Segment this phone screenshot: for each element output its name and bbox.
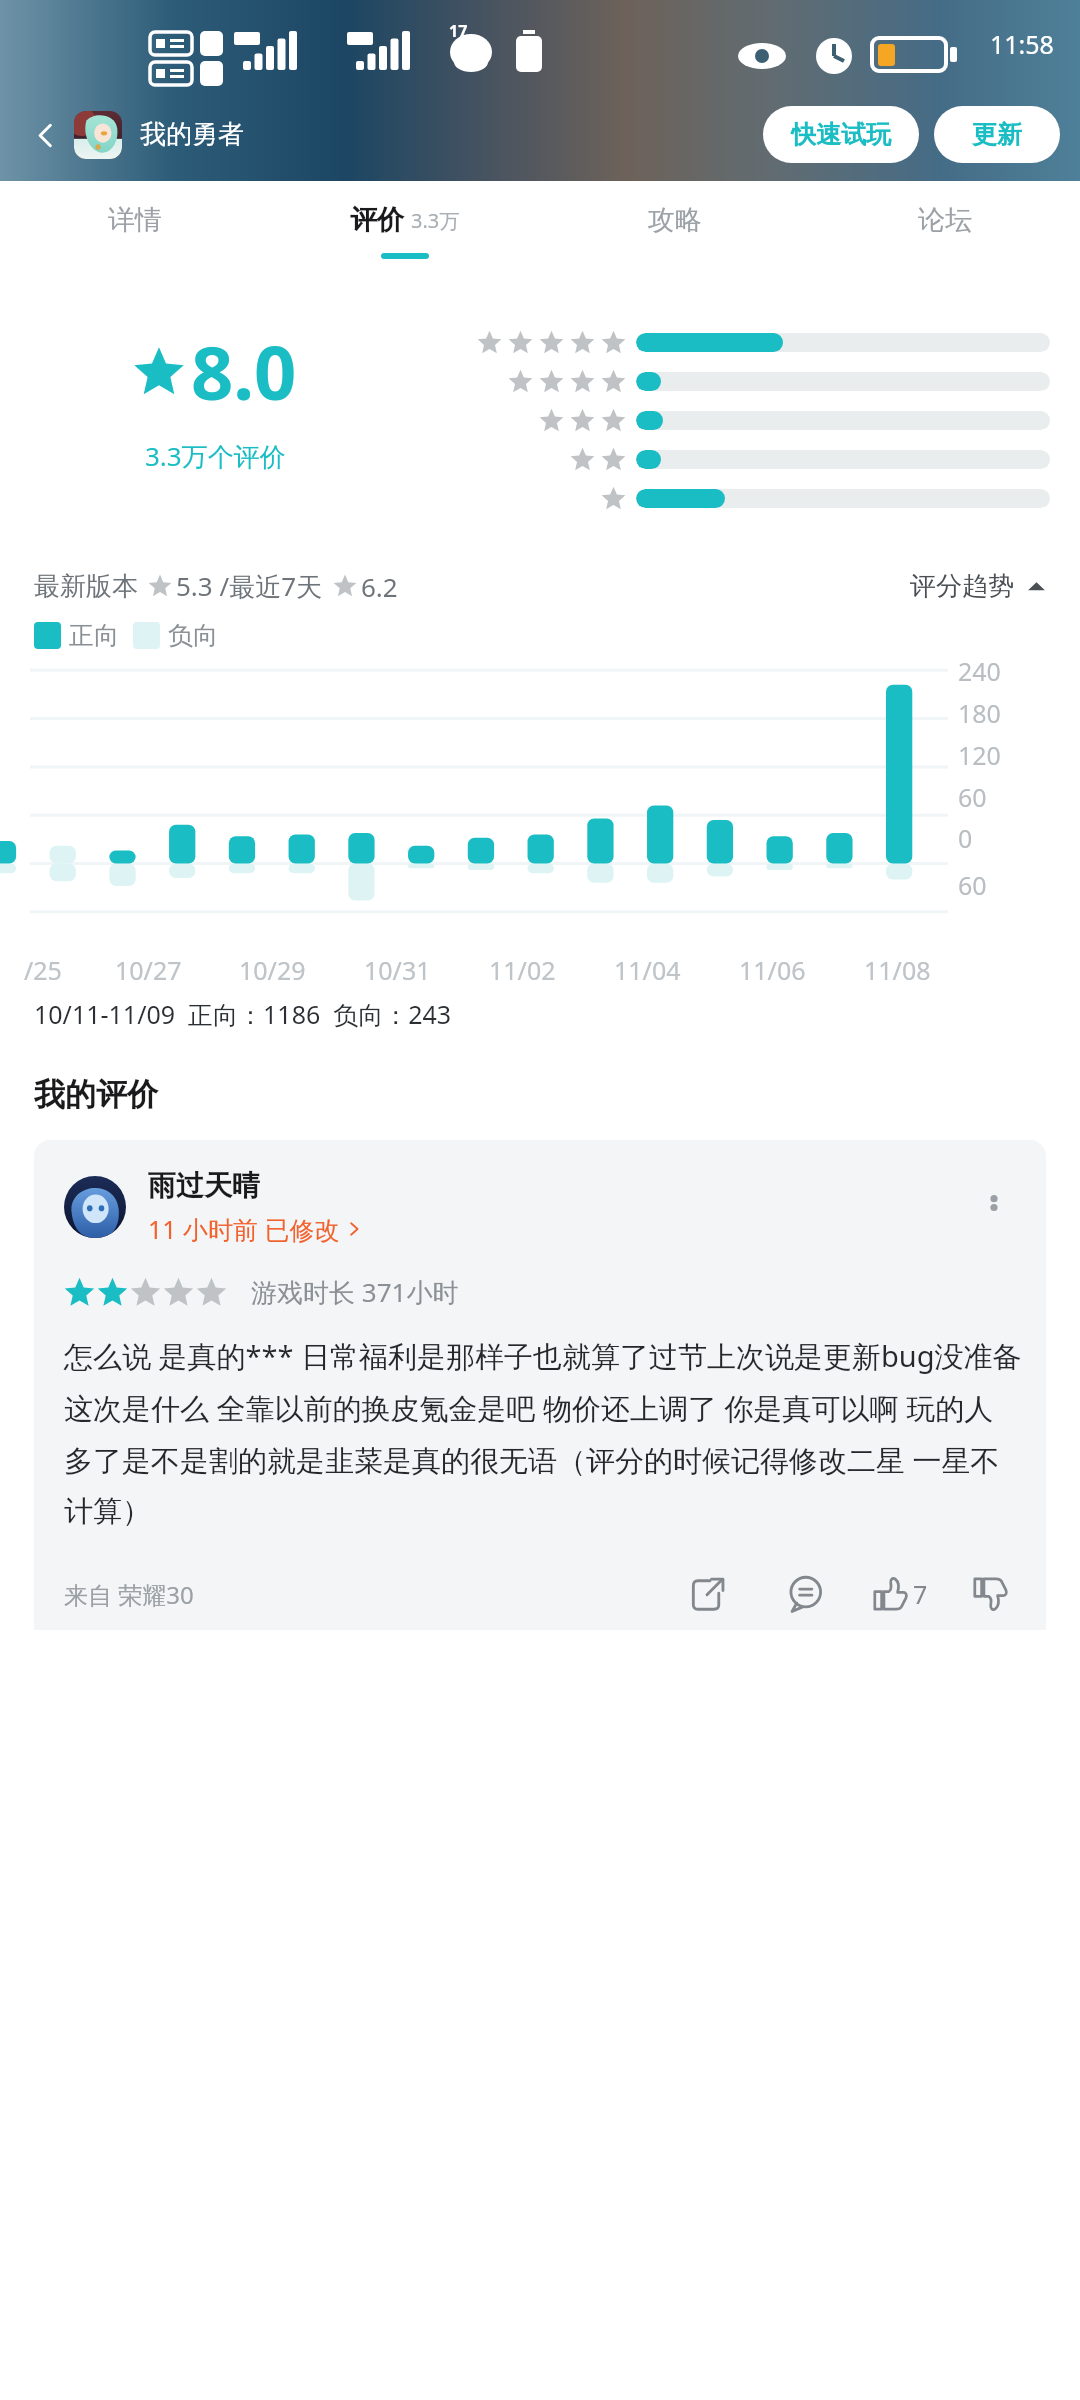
staticText: 11/02 [489,953,556,987]
staticText: /25 [24,953,62,987]
staticText: 3.3万 [411,207,460,234]
button[interactable]: Comment [779,1568,831,1620]
staticText: 180 [958,696,1001,730]
staticText: 5.3 /最近7天 [176,568,323,604]
staticText: 怎么说 是真的*** 日常福利是那样子也就算了过节上次说是更新bug没准备这次是… [64,1336,1022,1530]
button[interactable]: 评价 [270,181,540,287]
staticText: 评分趋势 [910,570,1014,603]
staticText: 10/29 [239,953,306,987]
staticText: 游戏时长 371小时 [251,1274,459,1310]
staticText: 来自 荣耀30 [64,1578,194,1611]
button[interactable]: Back [22,112,68,158]
staticText: 120 [958,738,1001,772]
button[interactable] [74,111,122,159]
button[interactable] [430,446,1050,473]
button[interactable] [430,329,1050,356]
staticText: 60 [958,780,987,814]
staticText: 11/06 [739,953,806,987]
button[interactable] [430,368,1050,395]
button[interactable]: Share [681,1568,733,1620]
button[interactable]: 攻略 [540,181,810,287]
staticText: 17 [449,20,468,42]
staticText: 雨过天晴 [148,1168,260,1203]
button[interactable] [430,407,1050,434]
staticText: 攻略 [648,203,702,237]
button[interactable]: 雨过天晴 [34,1140,1046,1630]
staticText: 7 [913,1577,928,1611]
button[interactable]: More options [966,1179,1022,1235]
button[interactable]: 论坛 [810,181,1080,287]
staticText: 3.3万个评价 [145,438,286,474]
staticText: 11 小时前 已修改 [148,1212,340,1246]
staticText: 60 [958,868,987,902]
button[interactable]: 更新 [934,106,1060,163]
button[interactable]: Dislike [964,1568,1016,1620]
button[interactable]: 11 小时前 已修改 [148,1212,363,1246]
staticText: 评价 [350,203,404,237]
staticText: 我的勇者 [140,118,244,151]
button[interactable]: 评分趋势 [910,570,1046,603]
staticText: 10/27 [115,953,182,987]
staticText: 10/31 [364,953,431,987]
staticText: 8.0 [191,321,297,422]
staticText: 快速试玩 [791,119,891,150]
button[interactable]: 快速试玩 [763,106,919,163]
staticText: 11/08 [864,953,931,987]
button[interactable]: 7 [871,1575,928,1613]
button[interactable] [430,485,1050,512]
button[interactable] [64,1176,126,1238]
staticText: 0 [958,821,973,855]
staticText: 240 [958,654,1001,688]
staticText: 我的评价 [34,1075,158,1114]
staticText: 论坛 [918,203,972,237]
staticText: 详情 [108,203,162,237]
staticText: 11:58 [990,27,1054,61]
staticText: 6.2 [361,569,398,604]
staticText: 最新版本 [34,570,138,603]
staticText: 10/11-11/09 正向：1186 负向：243 [34,997,452,1031]
staticText: 负向 [168,620,218,651]
staticText: 11/04 [614,953,681,987]
staticText: 正向 [69,620,119,651]
staticText: 更新 [972,119,1022,150]
button[interactable]: 详情 [0,181,270,287]
